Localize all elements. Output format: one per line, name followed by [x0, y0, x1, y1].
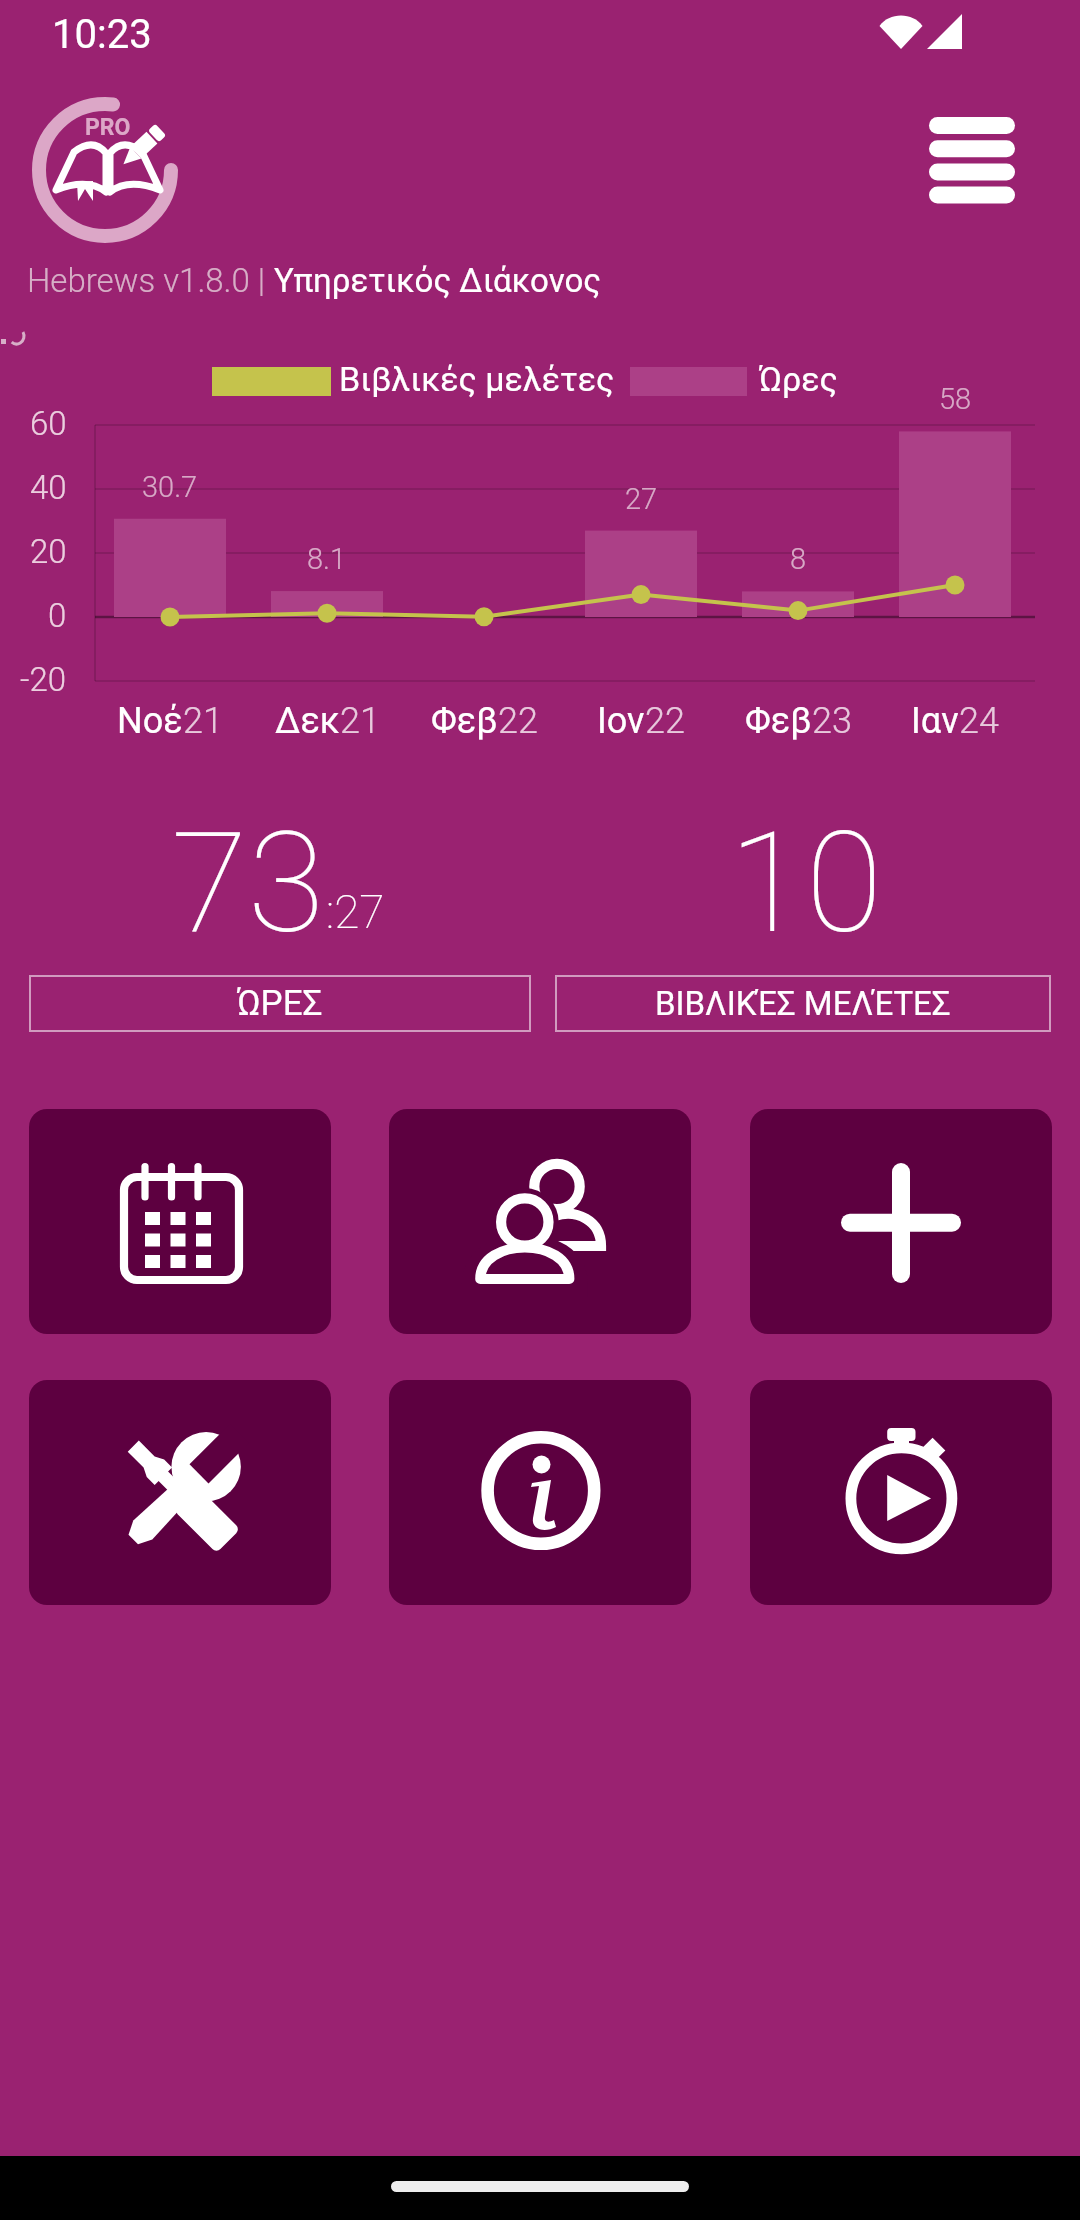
- staticText: 27: [625, 482, 658, 516]
- staticText: Ιον: [597, 700, 645, 742]
- staticText: Υπηρετικός Διάκονος: [274, 261, 602, 300]
- staticText: 24: [959, 700, 999, 742]
- button[interactable]: Info: [389, 1380, 691, 1605]
- staticText: 21: [183, 700, 223, 742]
- staticText: -20: [20, 660, 67, 699]
- staticText: Hebrews v1.8.0 |: [27, 261, 274, 300]
- button[interactable]: Timer: [750, 1380, 1052, 1605]
- staticText: Φεβ: [431, 700, 498, 742]
- staticText: 20: [30, 532, 67, 571]
- button[interactable]: Calendar: [29, 1109, 331, 1334]
- button[interactable]: Add: [750, 1109, 1052, 1334]
- staticText: 8.1: [307, 542, 347, 576]
- staticText: ΏΡΕΣ: [237, 983, 323, 1024]
- staticText: 21: [340, 700, 380, 742]
- staticText: 23: [812, 700, 852, 742]
- staticText: Ιαν: [911, 700, 959, 742]
- staticText: 30.7: [142, 470, 198, 504]
- staticText: Βιβλικές μελέτες: [339, 359, 615, 399]
- staticText: Νοέ: [117, 700, 183, 742]
- staticText: 58: [939, 382, 972, 416]
- staticText: 60: [30, 404, 67, 443]
- button[interactable]: Contacts: [389, 1109, 691, 1334]
- staticText: Δεκ: [275, 700, 340, 742]
- button[interactable]: ΏΡΕΣ: [29, 975, 531, 1032]
- staticText: 22: [645, 700, 685, 742]
- staticText: 40: [30, 468, 67, 507]
- staticText: 22: [498, 700, 538, 742]
- staticText: 0: [48, 596, 67, 635]
- button[interactable]: Tools: [29, 1380, 331, 1605]
- staticText: 10: [729, 801, 883, 965]
- staticText: 10:23: [52, 11, 152, 58]
- staticText: Ώρες: [759, 359, 838, 399]
- staticText: 8: [790, 542, 807, 576]
- staticText: :27: [326, 885, 385, 939]
- staticText: 73: [171, 801, 325, 965]
- staticText: PRO: [85, 114, 131, 141]
- staticText: ΒΙΒΛΙΚΈΣ ΜΕΛΈΤΕΣ: [655, 984, 951, 1023]
- button[interactable]: Menu: [900, 96, 1044, 210]
- button[interactable]: ΒΙΒΛΙΚΈΣ ΜΕΛΈΤΕΣ: [555, 975, 1051, 1032]
- staticText: Φεβ: [745, 700, 812, 742]
